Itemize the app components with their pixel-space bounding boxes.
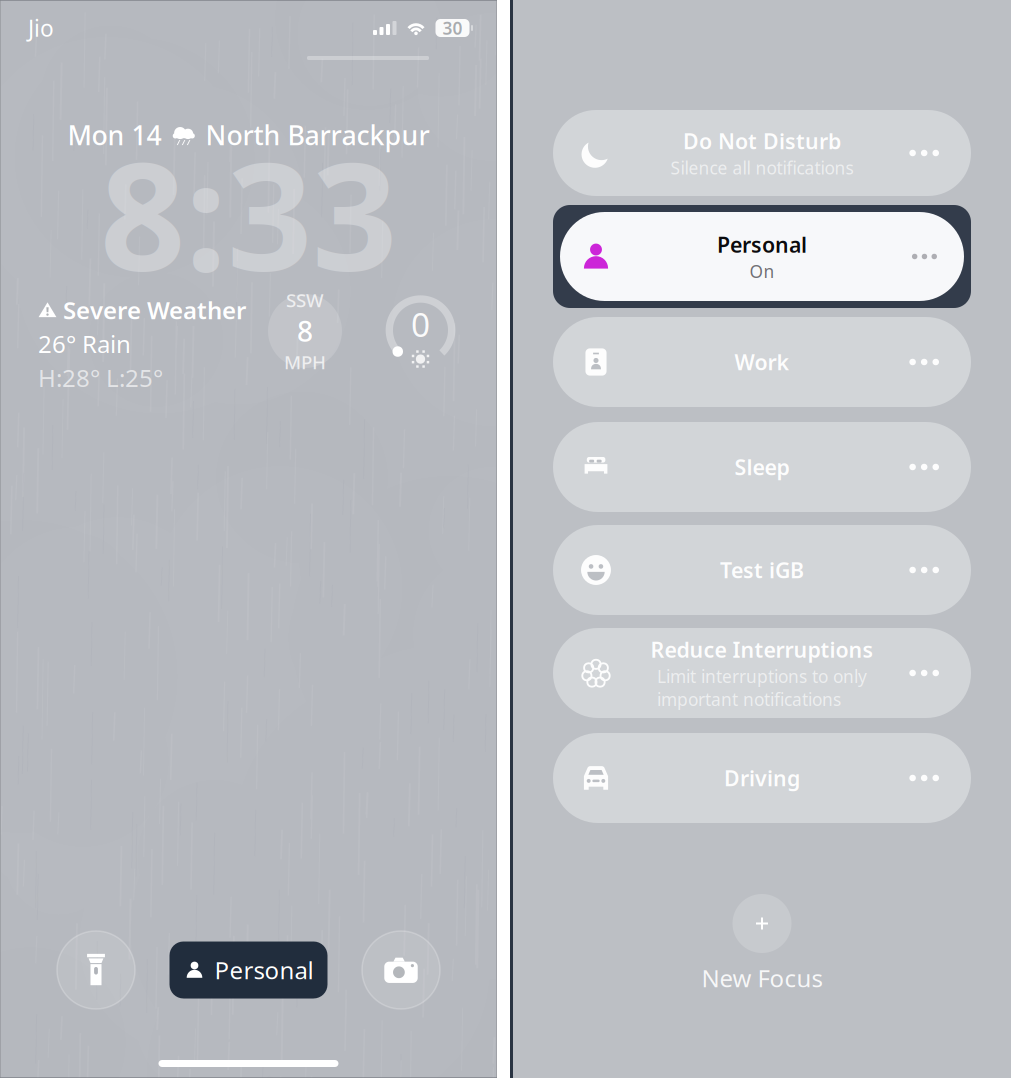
- button[interactable]: Flashlight: [57, 931, 135, 1009]
- staticText: H:28° L:25°: [38, 362, 163, 394]
- staticText: 26° Rain: [38, 328, 131, 360]
- staticText: New Focus: [701, 962, 822, 994]
- staticText: Test iGB: [720, 556, 804, 584]
- staticText: North Barrackpur: [205, 117, 429, 153]
- button[interactable]: Work: [553, 317, 971, 407]
- button[interactable]: Personal: [553, 205, 971, 308]
- staticText: On: [749, 260, 774, 283]
- staticText: MPH: [284, 350, 326, 374]
- staticText: Severe Weather: [63, 294, 246, 326]
- staticText: 30: [442, 16, 462, 39]
- staticText: Mon 14: [67, 117, 161, 153]
- button[interactable]: Personal: [169, 941, 327, 998]
- staticText: 8:33: [100, 114, 397, 312]
- button[interactable]: Driving: [553, 733, 971, 823]
- button[interactable]: Test iGB: [553, 525, 971, 615]
- button[interactable]: Do Not Disturb: [553, 110, 971, 196]
- staticText: Sleep: [734, 453, 789, 481]
- button[interactable]: Camera: [362, 931, 440, 1009]
- staticText: 8: [297, 312, 313, 350]
- staticText: Limit interruptions to only important no…: [657, 665, 867, 711]
- staticText: Personal: [717, 230, 807, 259]
- staticText: Work: [734, 348, 789, 376]
- staticText: SSW: [286, 288, 324, 312]
- staticText: Jio: [28, 13, 54, 43]
- button[interactable]: New Focus: [701, 894, 822, 994]
- staticText: Driving: [724, 764, 800, 792]
- button[interactable]: Sleep: [553, 422, 971, 512]
- button[interactable]: Reduce Interruptions: [553, 628, 971, 718]
- staticText: Reduce Interruptions: [650, 635, 873, 664]
- staticText: 0: [411, 302, 430, 346]
- staticText: Personal: [214, 954, 313, 986]
- staticText: Silence all notifications: [670, 156, 853, 179]
- staticText: Do Not Disturb: [683, 127, 841, 155]
